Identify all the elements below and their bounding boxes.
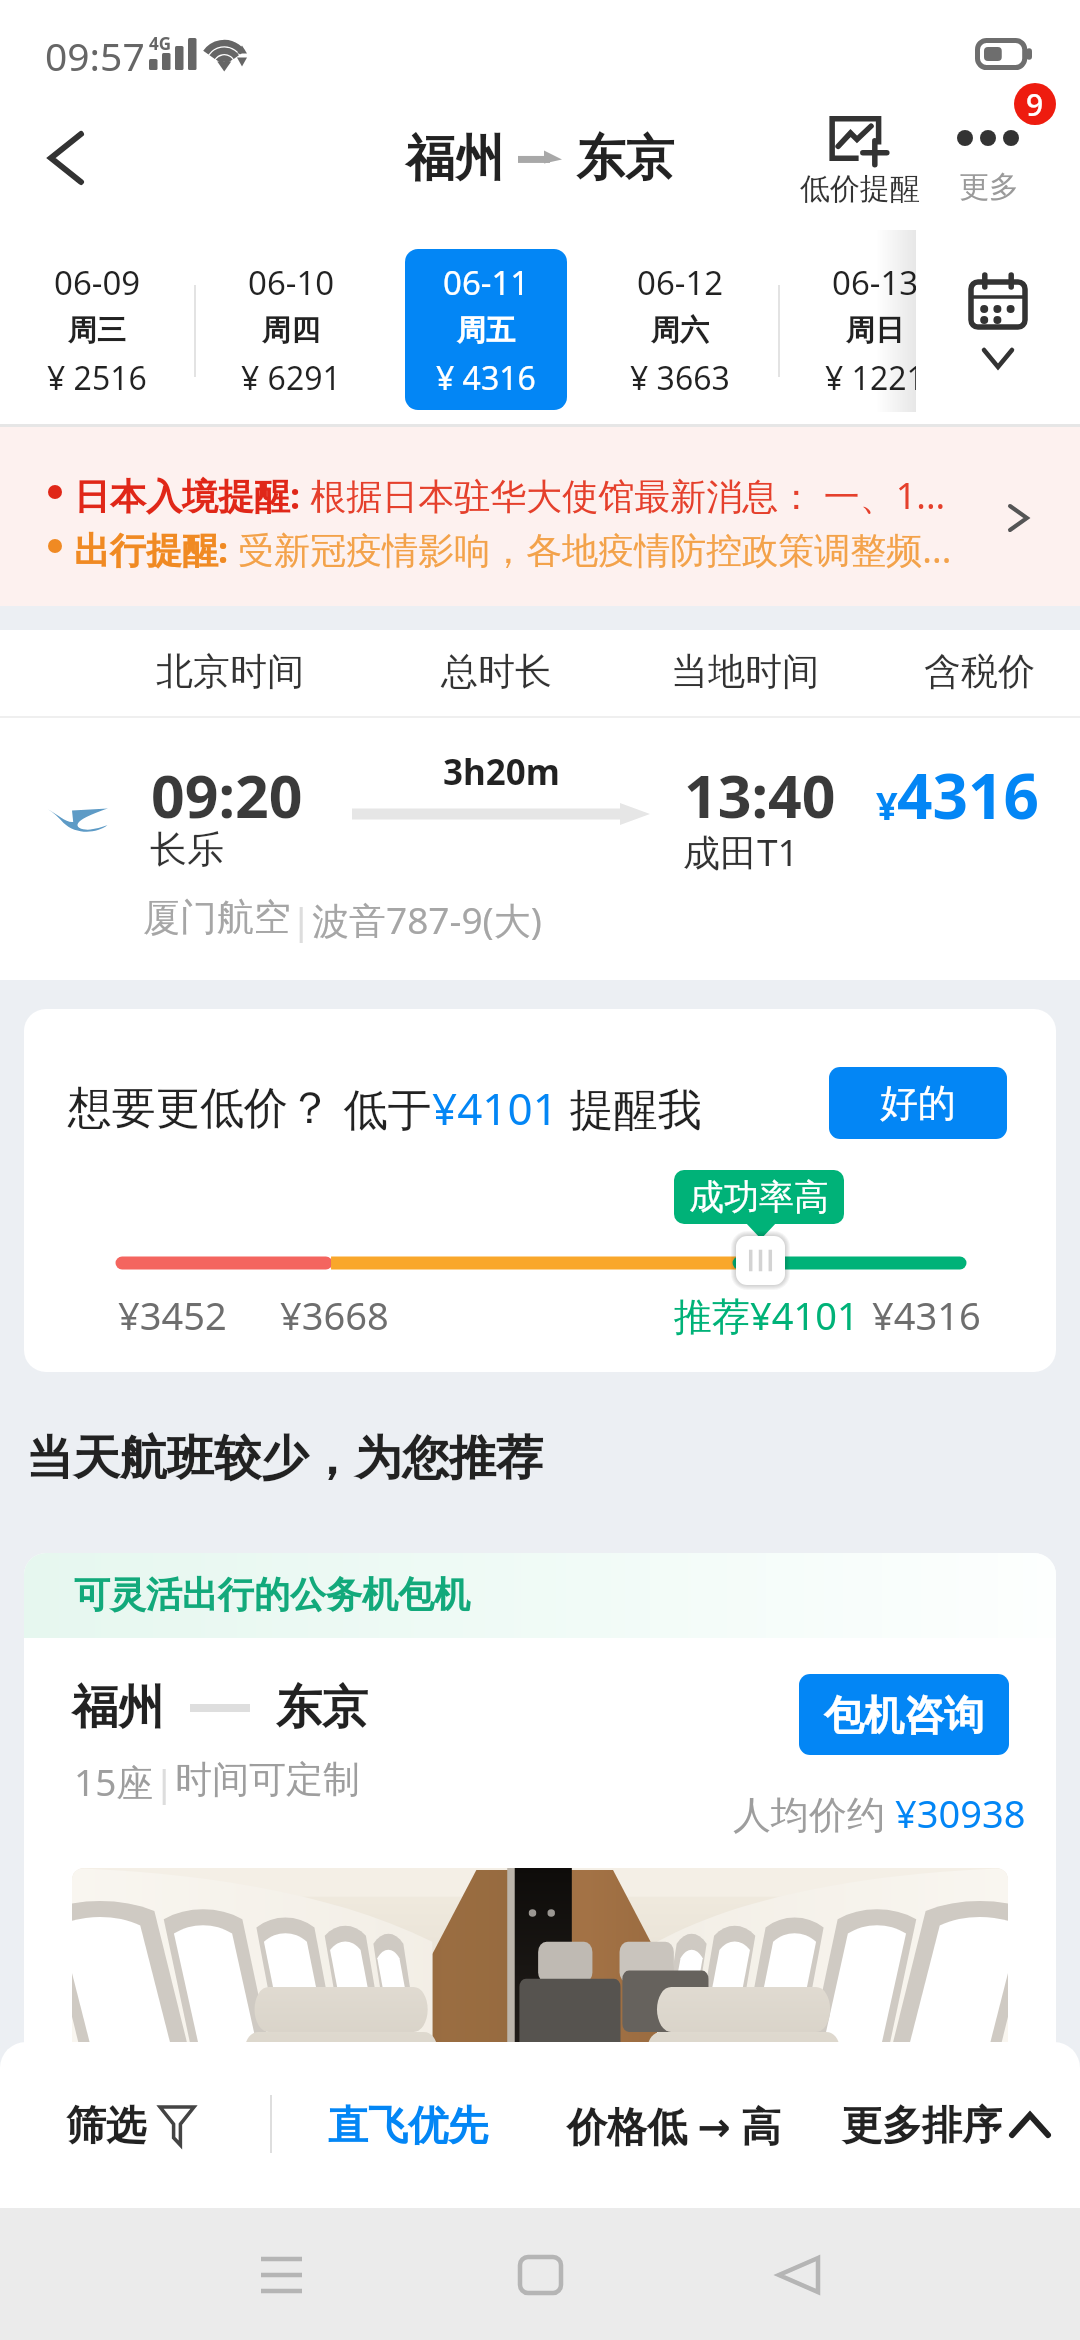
staticText: 09:20 <box>151 755 303 835</box>
staticText: 09:57 <box>45 29 145 82</box>
button[interactable]: 06-09 <box>7 249 187 410</box>
staticText: 低价提醒 <box>800 170 920 208</box>
staticText: 可灵活出行的公务机包机 <box>74 1572 470 1617</box>
staticText: 当天航班较少，为您推荐 <box>26 1429 543 1488</box>
staticText: 3h20m <box>443 748 560 796</box>
staticText: 周四 <box>262 312 320 349</box>
staticText: ¥ 6291 <box>241 356 341 400</box>
staticText: 更多排序 <box>842 2100 1002 2150</box>
staticText: 提醒我 <box>558 1078 702 1138</box>
staticText: ¥ 2516 <box>47 356 147 400</box>
staticText: 推荐¥4101 <box>674 1289 859 1341</box>
staticText: 北京时间 <box>156 648 304 695</box>
button[interactable]: 筛选 <box>66 2092 194 2158</box>
staticText: 日本入境提醒: <box>74 471 301 520</box>
staticText: 根据日本驻华大使馆最新消息： 一、1... <box>301 471 946 520</box>
staticText: 价格低 → 高 <box>567 2098 782 2153</box>
staticText: 更多 <box>959 168 1019 206</box>
button[interactable]: 价格低 → 高 <box>567 2092 782 2158</box>
staticText: ¥ <box>876 779 898 831</box>
staticText: 波音787-9(大) <box>312 894 542 945</box>
staticText: 福州 <box>72 1679 164 1737</box>
button[interactable]: 更多排序 <box>842 2092 1048 2158</box>
button[interactable]: Back <box>8 108 123 208</box>
button[interactable]: 06-12 <box>590 249 770 410</box>
staticText: ¥ 3663 <box>630 356 730 400</box>
staticText: 东京 <box>276 1679 368 1737</box>
button[interactable]: 更多 <box>940 100 1050 212</box>
button[interactable]: Home <box>480 2235 600 2315</box>
staticText: 想要更低价？ <box>68 1081 332 1136</box>
staticText: 成功率高 <box>689 1175 829 1219</box>
staticText: 周三 <box>68 312 126 349</box>
staticText: 人均价约 <box>733 1787 895 1839</box>
staticText: 周六 <box>651 312 709 349</box>
staticText: 9 <box>1026 84 1044 125</box>
button[interactable]: 直飞优先 <box>328 2092 488 2158</box>
staticText: ¥30938 <box>895 1787 1026 1839</box>
staticText: ¥ 4316 <box>436 356 536 400</box>
button[interactable]: Back <box>737 2235 857 2315</box>
staticText: 厦门航空 <box>143 894 291 941</box>
staticText: ¥3668 <box>280 1289 389 1341</box>
staticText: ¥4316 <box>872 1289 981 1341</box>
staticText: 13:40 <box>684 755 836 835</box>
staticText: 06-11 <box>443 260 530 305</box>
staticText: 15座 <box>74 1756 154 1807</box>
button[interactable]: 06-10 <box>201 249 381 410</box>
button[interactable]: 低价提醒 <box>790 100 928 212</box>
staticText: 4G <box>149 32 172 55</box>
button[interactable]: Recents <box>221 2235 341 2315</box>
button[interactable]: 06-13 <box>785 249 965 410</box>
staticText: 直飞优先 <box>328 2100 488 2150</box>
staticText: 06-12 <box>637 260 724 305</box>
staticText: 4316 <box>897 753 1039 837</box>
staticText: 06-09 <box>54 260 141 305</box>
staticText: 周日 <box>846 312 904 349</box>
staticText: 周五 <box>457 312 515 349</box>
staticText: 时间可定制 <box>175 1756 360 1803</box>
button[interactable]: Price slider <box>730 1230 791 1291</box>
staticText: 06-10 <box>248 260 335 305</box>
staticText: 东京 <box>576 128 674 190</box>
button[interactable] <box>0 718 1080 980</box>
staticText: 06-13 <box>832 260 919 305</box>
staticText: 出行提醒: <box>74 525 229 574</box>
staticText: 低于 <box>332 1078 432 1138</box>
staticText: 受新冠疫情影响，各地疫情防控政策调整频... <box>229 525 952 574</box>
staticText: ¥4101 <box>432 1078 558 1138</box>
staticText: ¥ 1221 <box>825 356 925 400</box>
staticText: ¥3452 <box>118 1289 227 1341</box>
staticText: 成田T1 <box>683 826 799 877</box>
staticText: 总时长 <box>441 648 552 695</box>
staticText: 筛选 <box>66 2100 146 2150</box>
staticText: 含税价 <box>924 648 1035 695</box>
staticText: 福州 <box>406 128 504 190</box>
button[interactable]: 日本入境提醒: <box>0 427 1080 606</box>
staticText: 长乐 <box>150 826 224 873</box>
button[interactable]: 06-11 <box>405 249 567 410</box>
staticText: 包机咨询 <box>824 1690 984 1740</box>
staticText: | <box>291 894 312 944</box>
button[interactable]: 好的 <box>829 1067 1007 1139</box>
staticText: | <box>154 1756 175 1806</box>
button[interactable]: Calendar <box>916 230 1080 412</box>
button[interactable]: 包机咨询 <box>799 1674 1009 1755</box>
staticText: 好的 <box>880 1079 956 1127</box>
staticText: 当地时间 <box>671 648 819 695</box>
